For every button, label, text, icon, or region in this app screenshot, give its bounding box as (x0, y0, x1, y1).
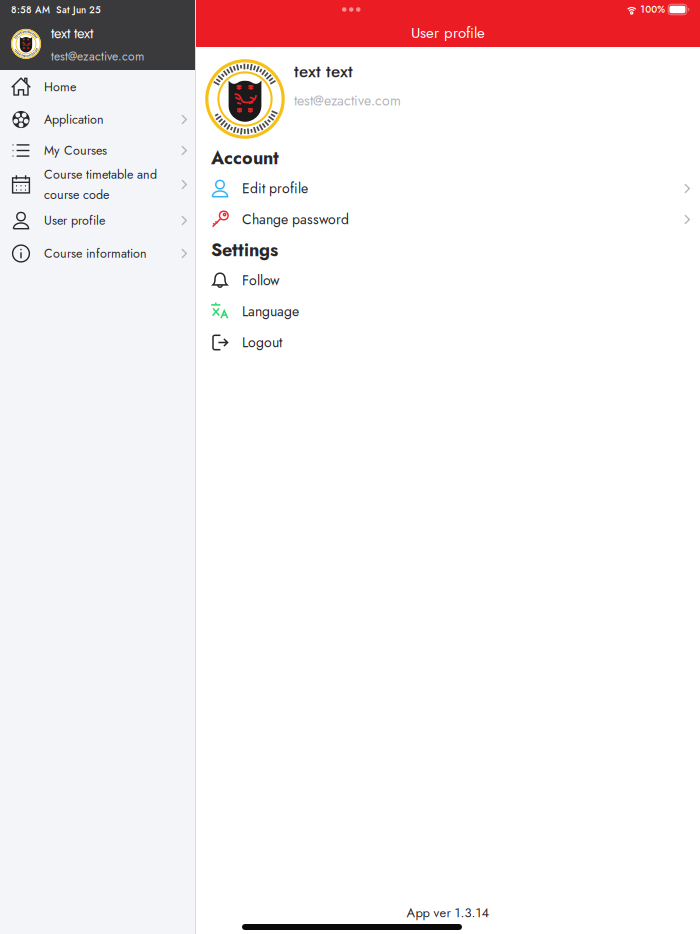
staticText: Logout (242, 332, 282, 353)
staticText: 100% (640, 3, 665, 16)
staticText: test@ezactive.com (51, 48, 144, 65)
button[interactable]: Application (0, 104, 195, 135)
staticText: App ver 1.3.14 (406, 903, 489, 922)
staticText: Account (211, 145, 279, 171)
staticText: Language (242, 301, 299, 322)
staticText: Edit profile (242, 178, 308, 199)
staticText: course code (44, 185, 109, 204)
button[interactable]: Language (196, 296, 700, 327)
staticText: Sat Jun 25 (56, 3, 101, 17)
button[interactable]: Logout (196, 327, 700, 358)
staticText: User profile (44, 211, 105, 230)
staticText: My Courses (44, 141, 107, 160)
staticText: Follow (242, 270, 280, 291)
staticText: Change password (242, 209, 349, 230)
staticText: Application (44, 110, 104, 129)
button[interactable]: Edit profile (196, 173, 700, 204)
staticText: Home (44, 78, 76, 96)
staticText: Course timetable and (44, 165, 157, 183)
button[interactable]: Home (0, 70, 195, 104)
button[interactable]: User profile (0, 203, 195, 238)
button[interactable]: Change password (196, 204, 700, 235)
staticText: 8:58 AM (11, 3, 50, 17)
button[interactable]: Course timetable and (0, 166, 195, 203)
button[interactable]: Course information (0, 238, 195, 269)
button[interactable]: Follow (196, 265, 700, 296)
staticText: text text (51, 23, 93, 44)
staticText: text text (294, 59, 353, 84)
staticText: User profile (411, 22, 485, 44)
button[interactable]: My Courses (0, 135, 195, 166)
staticText: Settings (211, 237, 278, 263)
staticText: test@ezactive.com (294, 91, 401, 111)
staticText: Course information (44, 244, 147, 263)
